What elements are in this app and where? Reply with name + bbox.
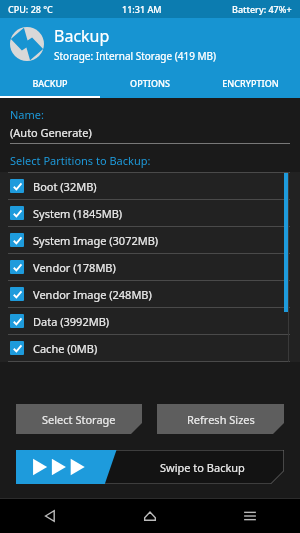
button[interactable]: Boot (32MB) [0,173,300,199]
staticText: Backup [54,25,110,47]
button[interactable]: Recent apps [200,499,300,533]
button[interactable]: System Image (3072MB) [0,227,300,253]
button[interactable]: Vendor (178MB) [0,254,300,280]
staticText: ENCRYPTION [222,77,279,89]
staticText: System (1845MB) [33,206,123,221]
staticText: Cache (0MB) [33,341,98,356]
staticText: OPTIONS [130,77,170,89]
staticText: Refresh Sizes [187,412,255,427]
staticText: Select Partitions to Backup: [10,153,151,168]
button[interactable]: Select Storage [16,404,142,434]
button[interactable]: Refresh Sizes [157,404,284,434]
staticText: 11:31 AM [122,3,162,15]
staticText: System Image (3072MB) [33,233,159,248]
staticText: Vendor Image (248MB) [33,287,152,302]
staticText: Swipe to Backup [160,460,245,475]
staticText: (Auto Generate) [10,125,92,140]
button[interactable]: Back [0,499,100,533]
button[interactable]: Cache (0MB) [0,335,300,361]
staticText: Battery: 47%+ [232,3,292,15]
staticText: Vendor (178MB) [33,260,116,275]
staticText: BACKUP [32,77,68,89]
button[interactable]: Home [100,499,200,533]
staticText: Name: [10,107,44,122]
button[interactable]: Swipe to Backup [16,450,284,484]
button[interactable]: System (1845MB) [0,200,300,226]
staticText: Boot (32MB) [33,179,97,194]
staticText: Select Storage [42,412,116,427]
button[interactable]: ENCRYPTION [200,70,300,96]
button[interactable]: BACKUP [0,70,100,96]
button[interactable]: OPTIONS [100,70,200,96]
button[interactable]: Data (3992MB) [0,308,300,334]
staticText: CPU: 28 °C [8,3,53,15]
staticText: Data (3992MB) [33,314,110,329]
button[interactable]: Vendor Image (248MB) [0,281,300,307]
staticText: Storage: Internal Storage (419 MB) [54,49,217,63]
